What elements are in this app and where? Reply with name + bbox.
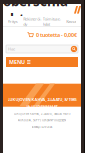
staticText: JA UUDENMMAT [26,104,57,109]
staticText: Rekisteröidy [23,16,41,27]
button[interactable]: Search [70,45,78,53]
button[interactable]: 0 tuotetta - 0,00€ [27,27,81,43]
button[interactable]: Yritys [3,16,22,27]
button[interactable]: Kassa [61,16,81,27]
staticText: Kassa [66,19,76,24]
staticText: LUKUJOVEN KAHVA, 2-LAATU, 8/1985 [7,97,76,102]
button[interactable]: Rekisteröidy [22,16,42,27]
button[interactable]: MENU [6,57,78,67]
staticText: SITMELJI LUVOITA [31,125,52,129]
button[interactable]: oberschlachter home [3,4,81,16]
staticText: LUKUJOVEN KAHVA, 2-LAATU, SEALTA HAVS [14,112,70,115]
staticText: MENU [9,58,25,66]
button[interactable]: Promo [3,85,81,108]
staticText: Hae [8,46,15,52]
staticText: Yritys [8,19,18,24]
button[interactable]: Toimitusehdot [42,16,61,27]
staticText: Toimitusehdot [43,16,61,27]
staticText: AUKIOITA, SOPPI OIKEANPUOLEISEEN [18,118,66,122]
staticText: oberschlachter [3,0,72,28]
staticText: 0 tuotetta - 0,00€ [36,31,77,39]
